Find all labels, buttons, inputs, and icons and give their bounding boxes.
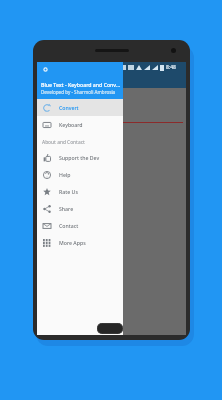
staticText: Developed by - Sharmoli Ambrosia [41, 89, 116, 95]
button[interactable]: Help [37, 166, 123, 183]
button[interactable]: Settings [40, 64, 51, 75]
button[interactable]: Rate Us [37, 183, 123, 200]
staticText: About and Contact [42, 139, 85, 146]
staticText: Convert [59, 104, 79, 111]
staticText: Keyboard [59, 121, 83, 128]
staticText: Rate Us [59, 188, 78, 195]
button[interactable]: Convert [37, 99, 123, 116]
button[interactable]: Keyboard [37, 116, 123, 133]
staticText: Support the Dev [59, 154, 100, 161]
staticText: Share [59, 205, 74, 212]
button[interactable]: More Apps [37, 234, 123, 251]
button[interactable]: Share [37, 200, 123, 217]
staticText: Blue Text - Keyboard and Converter [41, 81, 123, 88]
button[interactable]: Support the Dev [37, 149, 123, 166]
staticText: Contact [59, 222, 79, 229]
staticText: Help [59, 171, 71, 178]
staticText: 8:48 [166, 64, 176, 71]
button[interactable]: Contact [37, 217, 123, 234]
staticText: More Apps [59, 239, 86, 246]
